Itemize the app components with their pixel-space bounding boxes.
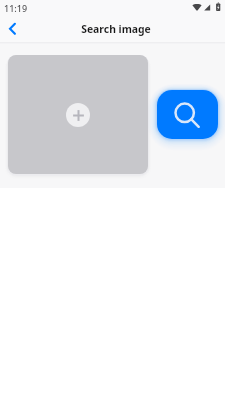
staticText: 11:19	[4, 2, 28, 14]
staticText: Search image	[81, 22, 151, 36]
button[interactable]: Back	[1, 19, 23, 41]
button[interactable]: Add image	[8, 55, 148, 174]
button[interactable]: Search	[157, 90, 218, 139]
